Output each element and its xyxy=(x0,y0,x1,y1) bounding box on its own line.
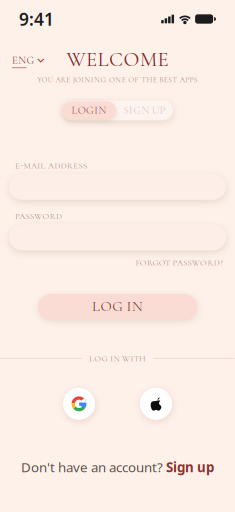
staticText: SIGN UP xyxy=(124,104,165,117)
staticText: 9:41 xyxy=(19,7,54,30)
staticText: LOG IN WITH xyxy=(89,353,146,364)
staticText: LOG IN xyxy=(92,297,143,315)
button[interactable]: LOG IN xyxy=(38,294,197,319)
staticText: WELCOME xyxy=(66,47,168,72)
staticText: FORGOT PASSWORD? xyxy=(135,257,223,268)
button[interactable]: Don't have an account? xyxy=(13,454,222,480)
button[interactable]: LOGIN xyxy=(62,101,116,119)
staticText: Don't have an account? xyxy=(21,458,163,476)
staticText: E-MAIL ADDRESS xyxy=(15,160,87,171)
staticText: YOU ARE JOINING ONE OF THE BEST APPS xyxy=(37,75,198,84)
staticText: ENG xyxy=(12,54,34,67)
button[interactable]: Sign in with Apple xyxy=(140,388,172,420)
button[interactable]: SIGN UP xyxy=(116,101,173,119)
button[interactable]: Language: English xyxy=(10,51,46,71)
staticText: Sign up xyxy=(166,458,214,476)
staticText: LOGIN xyxy=(71,104,107,117)
staticText: PASSWORD xyxy=(15,211,62,221)
button[interactable]: Sign in with Google xyxy=(63,388,95,420)
button[interactable]: FORGOT PASSWORD? xyxy=(135,257,226,268)
